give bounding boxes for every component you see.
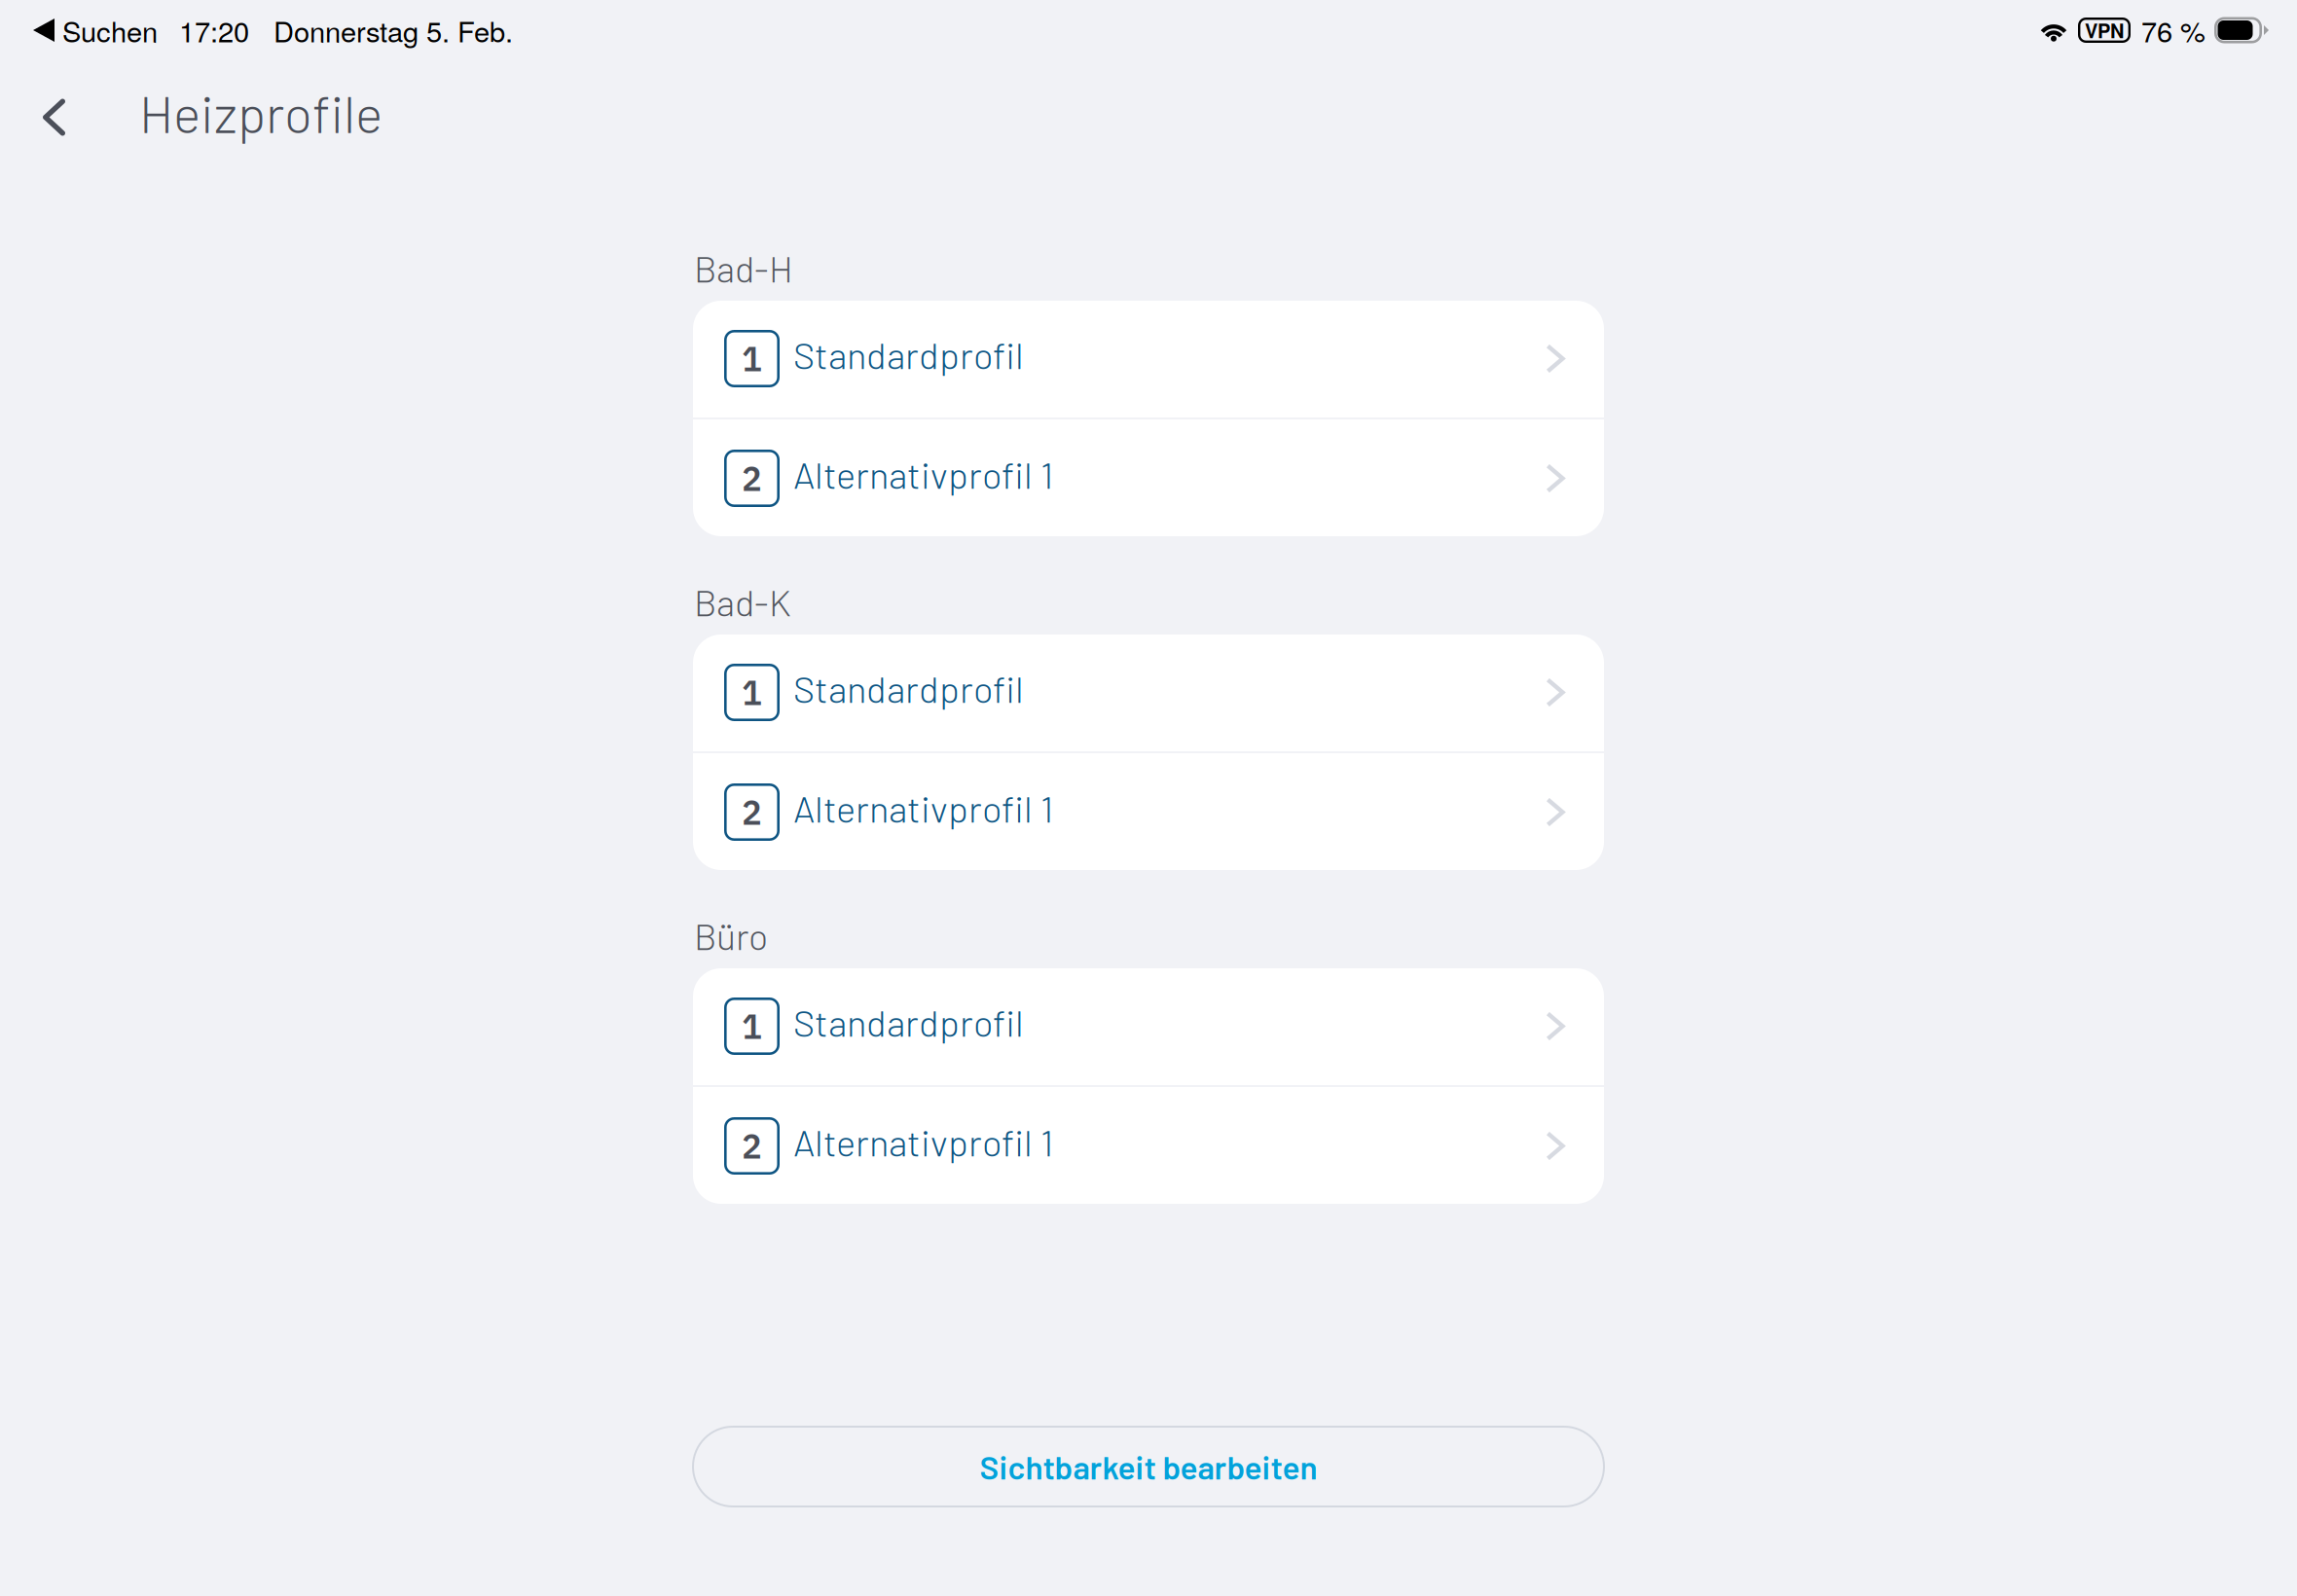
staticText: 2 <box>742 456 762 500</box>
button[interactable]: 2 <box>693 1087 1604 1205</box>
button[interactable]: Sichtbarkeit bearbeiten <box>693 1427 1604 1506</box>
staticText: 1 <box>742 1004 762 1048</box>
button[interactable]: 2 <box>693 419 1604 537</box>
staticText: Standardprofil <box>793 332 1024 376</box>
staticText: 17:20 <box>179 10 249 50</box>
staticText: Suchen <box>62 10 158 50</box>
staticText: Standardprofil <box>793 1000 1024 1044</box>
button[interactable]: 1 <box>693 300 1604 417</box>
staticText: Heizprofile <box>139 81 383 144</box>
staticText: 1 <box>742 337 762 381</box>
staticText: Alternativprofil 1 <box>793 452 1053 496</box>
staticText: Bad-H <box>694 246 793 290</box>
staticText: Donnerstag 5. Feb. <box>273 10 513 50</box>
button[interactable]: 2 <box>693 753 1604 871</box>
staticText: Alternativprofil 1 <box>793 1119 1053 1164</box>
staticText: Alternativprofil 1 <box>793 786 1053 830</box>
button[interactable]: Zurück <box>0 77 139 155</box>
staticText: 2 <box>742 1124 762 1168</box>
staticText: Standardprofil <box>793 666 1024 710</box>
button[interactable]: 1 <box>693 634 1604 751</box>
staticText: Sichtbarkeit bearbeiten <box>980 1447 1317 1486</box>
staticText: 1 <box>742 671 762 714</box>
staticText: Büro <box>694 914 768 957</box>
button[interactable]: 1 <box>693 967 1604 1085</box>
staticText: 2 <box>742 790 762 834</box>
staticText: Bad-K <box>694 580 791 624</box>
staticText: 76 % <box>2141 10 2206 50</box>
staticText: VPN <box>2085 16 2124 44</box>
